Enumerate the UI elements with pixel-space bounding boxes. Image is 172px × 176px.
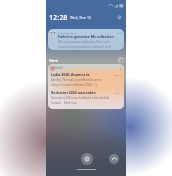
staticText: Aeroflot, Personal Ltr, and Newsline are… xyxy=(51,78,102,82)
staticText: Nov 11 xyxy=(114,91,122,94)
staticText: Rockstart 2026 now takes xyxy=(51,90,96,95)
staticText: 12:28 xyxy=(49,12,68,22)
button[interactable]: Phone xyxy=(109,154,119,164)
staticText: rest of an urgent duplicate continued; m… xyxy=(58,45,112,49)
staticText: Forward xyxy=(51,101,62,105)
staticText: Rockstart is 2026 now. Surfboard is frie… xyxy=(51,96,110,100)
button[interactable]: Post-cap service xyxy=(48,29,124,50)
button[interactable]: Clear all notifications xyxy=(118,57,124,63)
staticText: now xyxy=(117,31,122,34)
staticText: Failed to generate Ms collection mail xyxy=(58,34,122,39)
staticText: Gmail xyxy=(55,66,63,70)
staticText: Mark read xyxy=(64,101,77,105)
button[interactable]: Notification settings xyxy=(115,13,124,22)
staticText: Silent xyxy=(49,58,58,62)
button[interactable]: Gmail xyxy=(48,64,124,109)
staticText: We tried a request notification. Here is… xyxy=(58,40,110,44)
staticText: Nov 12 xyxy=(114,73,122,76)
staticText: charge of a year notification 2026 - 12 xyxy=(51,83,97,87)
staticText: Lydia 2026: Anuncia la xyxy=(51,72,90,77)
staticText: Post-cap service xyxy=(58,31,77,34)
button[interactable]: Camera xyxy=(81,153,93,165)
staticText: Wed, Nov 13 xyxy=(70,15,92,20)
